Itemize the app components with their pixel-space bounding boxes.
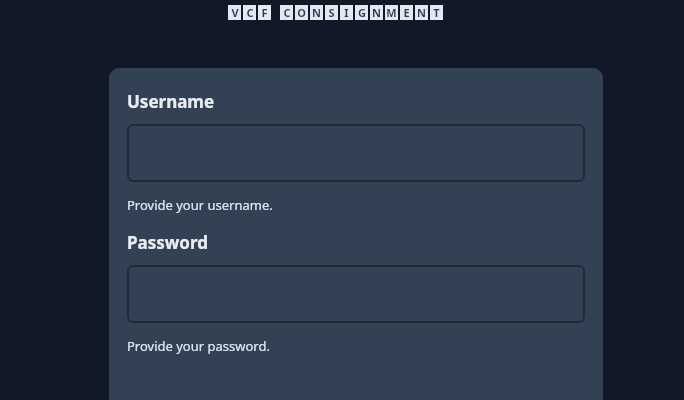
staticText: C (283, 5, 291, 20)
button[interactable]: V (228, 5, 443, 20)
staticText: N (417, 5, 426, 20)
staticText: C (246, 5, 254, 20)
button[interactable]: Password input (127, 265, 585, 323)
button[interactable]: Username input (127, 124, 585, 182)
staticText: M (386, 5, 397, 20)
staticText: I (344, 5, 349, 20)
staticText: E (403, 5, 410, 20)
staticText: N (312, 5, 321, 20)
staticText: Provide your username. (127, 196, 273, 214)
staticText: Password (127, 231, 208, 254)
staticText: T (433, 5, 440, 20)
staticText: F (261, 5, 268, 20)
staticText: S (328, 5, 335, 20)
staticText: Provide your password. (127, 337, 270, 355)
staticText: G (358, 5, 366, 20)
staticText: O (297, 5, 306, 20)
staticText: Username (127, 90, 215, 113)
staticText: N (372, 5, 381, 20)
staticText: V (231, 5, 239, 20)
